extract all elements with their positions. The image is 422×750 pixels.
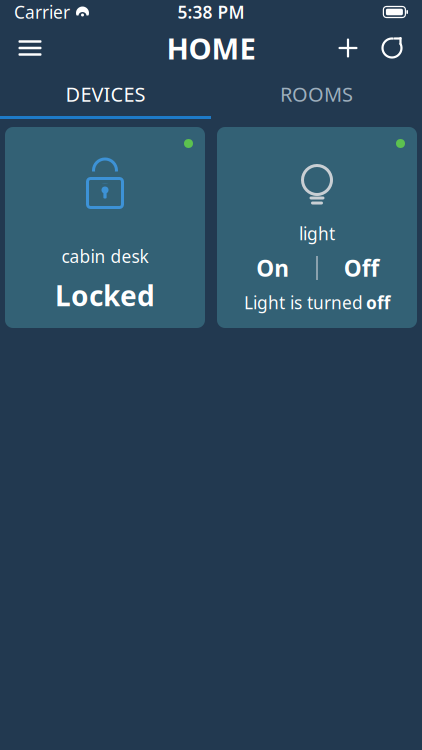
staticText: DEVICES: [65, 81, 145, 107]
button[interactable]: cabin desk: [5, 127, 205, 328]
staticText: Off: [344, 253, 379, 283]
staticText: ROOMS: [280, 81, 353, 107]
staticText: off: [366, 291, 390, 314]
button[interactable]: Add: [326, 26, 370, 70]
staticText: light: [299, 222, 335, 245]
staticText: On: [256, 253, 289, 283]
staticText: Carrier: [14, 0, 70, 23]
button[interactable]: On: [229, 254, 316, 282]
button[interactable]: Menu: [8, 26, 52, 70]
staticText: 5:38 PM: [177, 0, 244, 23]
staticText: Light is turned: [244, 291, 363, 314]
button[interactable]: DEVICES: [0, 72, 211, 116]
button[interactable]: Off: [318, 254, 405, 282]
staticText: Locked: [55, 277, 155, 314]
staticText: cabin desk: [61, 245, 148, 268]
button[interactable]: Refresh: [370, 26, 414, 70]
button[interactable]: light: [217, 127, 417, 328]
staticText: HOME: [166, 28, 255, 67]
button[interactable]: ROOMS: [211, 72, 422, 116]
